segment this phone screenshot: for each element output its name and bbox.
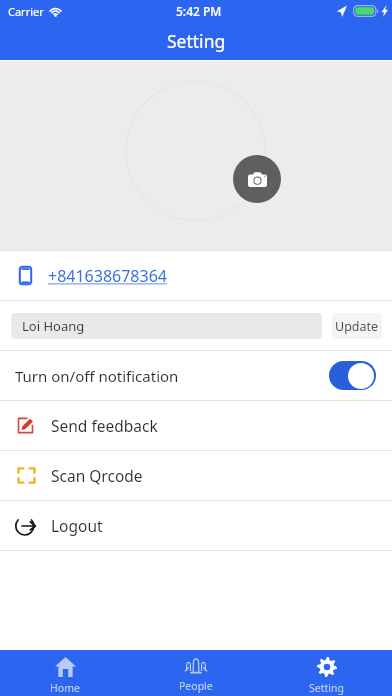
staticText: People xyxy=(179,679,213,693)
button[interactable]: Update xyxy=(332,313,382,339)
button[interactable]: +841638678364 xyxy=(0,251,392,300)
button[interactable]: Send feedback xyxy=(0,401,392,450)
staticText: Setting xyxy=(309,681,344,695)
staticText: Turn on/off notification xyxy=(15,366,179,386)
staticText: Send feedback xyxy=(51,415,158,436)
staticText: 5:42 PM xyxy=(176,3,222,19)
button[interactable]: Loi Hoang xyxy=(11,313,322,339)
staticText: Loi Hoang xyxy=(22,317,85,335)
button[interactable]: People xyxy=(130,650,261,696)
staticText: Carrier xyxy=(8,4,44,19)
button[interactable]: Home xyxy=(0,650,130,696)
staticText: Home xyxy=(50,681,80,695)
button[interactable]: Logout xyxy=(0,501,392,550)
button[interactable]: Setting xyxy=(261,650,392,696)
staticText: +841638678364 xyxy=(48,265,167,287)
button[interactable]: Scan Qrcode xyxy=(0,451,392,500)
staticText: Setting xyxy=(167,29,226,53)
staticText: Update xyxy=(335,318,379,335)
button[interactable]: Turn on/off notification xyxy=(0,351,392,400)
staticText: Logout xyxy=(51,515,103,536)
button[interactable]: Change profile photo xyxy=(233,155,281,203)
staticText: Scan Qrcode xyxy=(51,465,143,486)
